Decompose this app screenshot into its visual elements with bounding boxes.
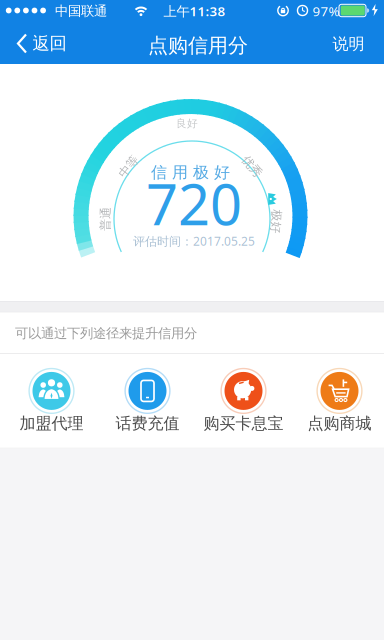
staticText: 信 用 极 好 [151, 163, 230, 182]
staticText: 普通 [93, 212, 117, 226]
staticText: 购买卡息宝 [203, 414, 283, 433]
staticText: 优秀 [240, 159, 264, 174]
staticText: 上午11:38 [163, 2, 225, 20]
button[interactable]: 购买卡息宝 [195, 368, 291, 433]
staticText: 中等 [116, 159, 140, 174]
staticText: 加盟代理 [19, 414, 83, 433]
button[interactable]: 返回 [0, 22, 66, 65]
button[interactable]: 话费充值 [99, 368, 195, 433]
staticText: 可以通过下列途径来提升信用分 [15, 325, 197, 341]
staticText: 说明 [332, 34, 364, 54]
staticText: 极好 [264, 214, 288, 229]
button[interactable]: 加盟代理 [3, 368, 99, 433]
staticText: 良好 [176, 117, 198, 130]
staticText: 点购信用分 [148, 33, 248, 58]
staticText: 话费充值 [115, 414, 179, 433]
staticText: 97% [312, 2, 339, 20]
button[interactable]: 点购商城 [291, 368, 384, 433]
staticText: 点购商城 [307, 414, 371, 433]
button[interactable]: 说明 [332, 22, 383, 65]
staticText: 中国联通 [55, 3, 107, 19]
staticText: 评估时间：2017.05.25 [133, 233, 255, 249]
staticText: 720 [146, 166, 242, 241]
staticText: 返回 [32, 33, 66, 54]
